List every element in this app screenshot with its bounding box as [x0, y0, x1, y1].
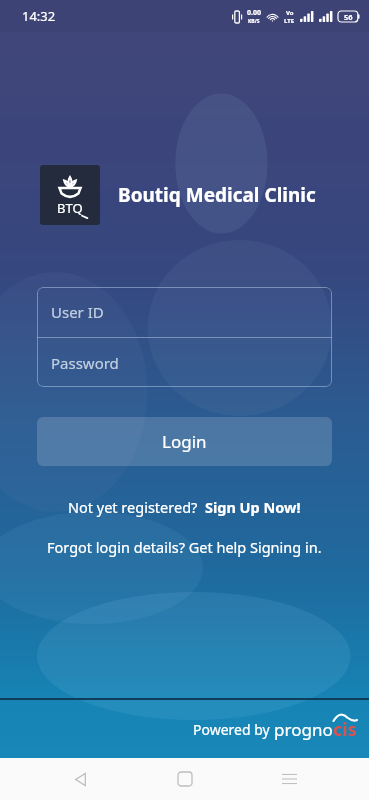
button[interactable]: Recent apps [265, 758, 313, 800]
button[interactable]: Forgot login details? Get help Signing i… [0, 537, 369, 557]
staticText: 0.00 [247, 8, 261, 18]
button[interactable]: Login [37, 417, 332, 466]
staticText: Login [162, 430, 207, 453]
staticText: LTE [284, 17, 295, 25]
staticText: Powered by [193, 720, 274, 739]
staticText: Vo [286, 9, 294, 17]
button[interactable]: Home [161, 758, 209, 800]
staticText: progno [274, 718, 333, 741]
staticText: cis [333, 717, 357, 742]
staticText: KB/S [248, 18, 260, 25]
staticText: Not yet registered? Sign Up Now! [68, 497, 301, 517]
button[interactable]: Not yet registered? Sign Up Now! [0, 497, 369, 517]
staticText: Forgot login details? Get help Signing i… [47, 537, 322, 557]
staticText: BTQ [57, 199, 83, 217]
button[interactable]: User ID [37, 287, 332, 337]
staticText: Password [51, 353, 119, 373]
button[interactable]: Password [37, 338, 332, 387]
staticText: Boutiq Medical Clinic [118, 182, 316, 208]
staticText: User ID [51, 302, 104, 322]
staticText: 14:32 [22, 7, 56, 25]
staticText: 56 [344, 12, 353, 22]
button[interactable]: Back [56, 758, 104, 800]
